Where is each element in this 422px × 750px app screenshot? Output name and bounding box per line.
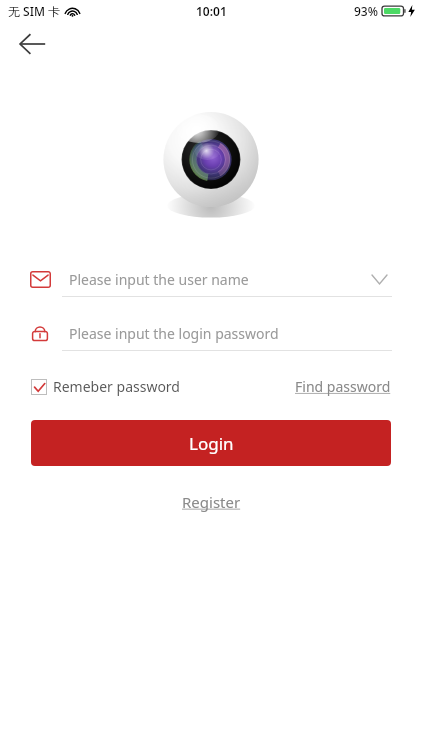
button[interactable]: Please input the user name: [30, 262, 392, 296]
button[interactable]: Back: [10, 22, 54, 66]
staticText: 10:01: [196, 3, 227, 19]
staticText: Register: [182, 492, 241, 512]
button[interactable]: Register: [176, 486, 247, 518]
button[interactable]: Remeber password: [31, 377, 180, 396]
button[interactable]: Login: [31, 420, 391, 466]
staticText: Login: [189, 432, 234, 455]
staticText: Remeber password: [53, 377, 180, 396]
staticText: 93%: [354, 3, 378, 19]
button[interactable]: Please input the login password: [30, 316, 392, 350]
staticText: Please input the login password: [69, 324, 279, 343]
staticText: 无 SIM 卡: [8, 3, 61, 19]
staticText: Please input the user name: [69, 270, 249, 289]
staticText: Find password: [295, 377, 391, 396]
button[interactable]: Find password: [295, 377, 391, 396]
button[interactable]: Show accounts: [366, 266, 392, 292]
